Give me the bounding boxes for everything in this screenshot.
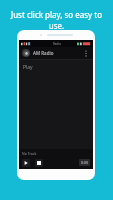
button[interactable]: Stop — [35, 159, 43, 167]
staticText: Just click play, so easy to use. — [4, 9, 109, 31]
staticText: AM Radio — [33, 50, 54, 56]
button[interactable]: Play — [22, 159, 30, 167]
button[interactable]: More options — [81, 49, 90, 58]
staticText: No Track — [22, 151, 37, 156]
staticText: Play — [23, 64, 33, 71]
staticText: 0:00 — [81, 160, 88, 165]
staticText: Radio — [53, 42, 61, 46]
